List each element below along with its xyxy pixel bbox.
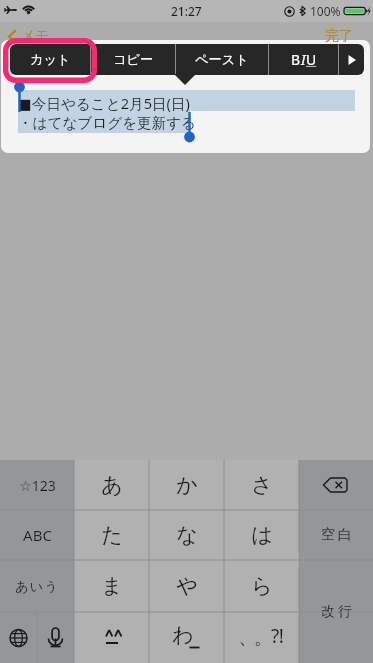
button[interactable]: Delete <box>299 460 373 510</box>
button[interactable]: 、。 <box>224 612 299 663</box>
button[interactable]: ま <box>74 560 149 612</box>
staticText: ABC <box>23 525 52 545</box>
staticText: カット <box>30 51 71 68</box>
staticText: さ <box>251 472 273 498</box>
button[interactable]: ペースト <box>176 44 268 75</box>
button[interactable]: わ <box>149 612 224 663</box>
button[interactable]: あ <box>74 460 149 510</box>
staticText: I <box>301 50 306 69</box>
button[interactable]: あいう <box>0 560 74 612</box>
staticText: ■今日やること2月5日(日) <box>18 93 190 113</box>
button[interactable]: ABC <box>0 510 74 560</box>
button[interactable]: や <box>149 560 224 612</box>
button[interactable]: ☆123 <box>0 460 74 510</box>
staticText: な <box>176 522 198 548</box>
staticText: メモ <box>21 27 50 45</box>
staticText: た <box>101 522 123 548</box>
staticText: 改行 <box>320 603 353 621</box>
staticText: 100% <box>310 3 341 19</box>
staticText: U <box>306 50 317 69</box>
staticText: は <box>251 522 273 548</box>
staticText: コピー <box>113 51 154 68</box>
button[interactable]: Voice input <box>37 612 74 663</box>
button[interactable]: カット <box>10 44 90 75</box>
button[interactable]: More options <box>339 44 364 75</box>
staticText: や <box>176 573 198 599</box>
staticText: あいう <box>15 578 59 594</box>
staticText: ま <box>101 573 123 599</box>
staticText: ら <box>251 573 273 599</box>
button[interactable]: 改行 <box>299 560 373 663</box>
staticText: あ <box>101 472 123 498</box>
button[interactable]: メモ <box>5 26 52 46</box>
button[interactable]: Switch keyboard <box>0 612 37 663</box>
staticText: 、。 <box>240 626 271 650</box>
staticText: ペースト <box>195 51 249 68</box>
staticText: ・はてなブログを更新する <box>18 114 197 132</box>
staticText: 空白 <box>320 526 353 544</box>
staticText: B <box>291 50 301 69</box>
button[interactable]: か <box>149 460 224 510</box>
staticText: 21:27 <box>171 3 202 19</box>
button[interactable]: コピー <box>91 44 175 75</box>
button[interactable]: さ <box>224 460 299 510</box>
button[interactable]: た <box>74 510 149 560</box>
button[interactable]: Emoji face <box>74 612 149 663</box>
button[interactable]: は <box>224 510 299 560</box>
staticText: ?! <box>271 623 284 649</box>
staticText: か <box>176 472 198 498</box>
staticText: 完了 <box>325 27 353 45</box>
button[interactable]: な <box>149 510 224 560</box>
button[interactable]: Bold Italic Underline <box>269 44 338 75</box>
staticText: わ <box>172 622 194 648</box>
button[interactable]: ら <box>224 560 299 612</box>
button[interactable]: 完了 <box>322 26 356 46</box>
button[interactable]: 空白 <box>299 510 373 560</box>
staticText: ☆123 <box>19 476 56 495</box>
